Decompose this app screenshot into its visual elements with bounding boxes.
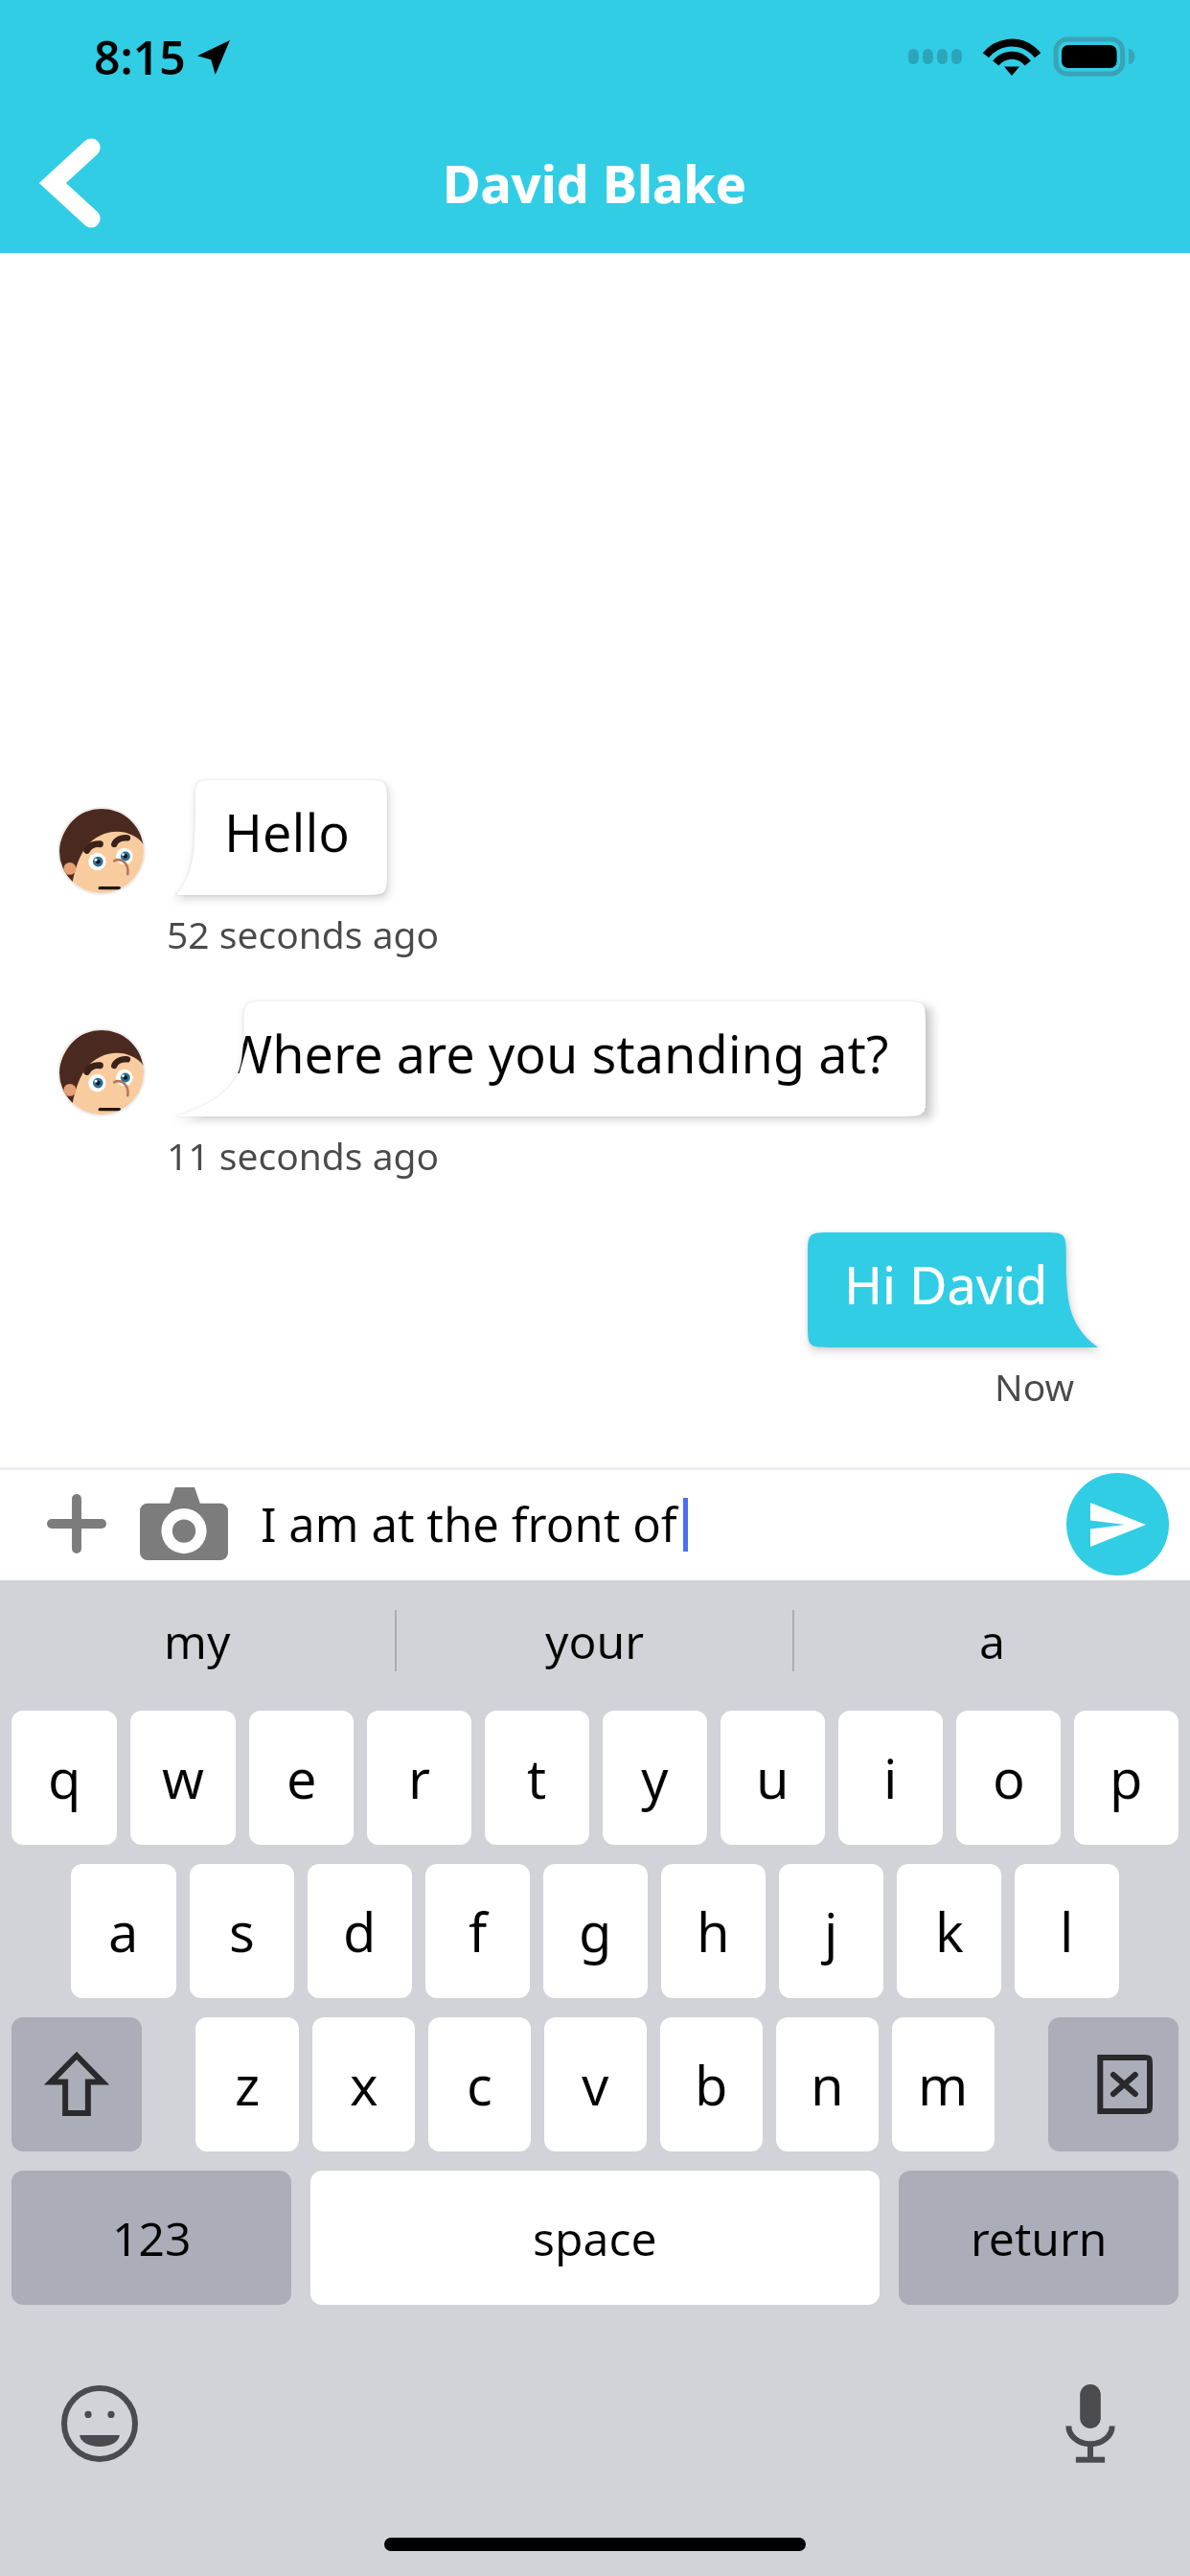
button[interactable]: Add attachment [38, 1485, 115, 1562]
staticText: Hi David [844, 1249, 1048, 1320]
button[interactable]: b [660, 2017, 763, 2151]
button[interactable]: Emoji [54, 2378, 146, 2470]
staticText: a [108, 1895, 139, 1967]
staticText: h [697, 1895, 730, 1967]
button[interactable]: v [544, 2017, 647, 2151]
staticText: o [993, 1741, 1025, 1814]
staticText: Where are you standing at? [224, 1018, 889, 1089]
staticText: g [579, 1895, 612, 1967]
staticText: a [979, 1610, 1005, 1672]
staticText: s [229, 1895, 255, 1967]
staticText: 8:15 [94, 26, 186, 88]
button[interactable]: your [397, 1580, 792, 1701]
button[interactable]: 123 [11, 2171, 291, 2305]
button[interactable]: x [312, 2017, 415, 2151]
staticText: n [811, 2048, 844, 2121]
staticText: 52 seconds ago [167, 908, 440, 959]
staticText: x [350, 2048, 378, 2121]
staticText: 11 seconds ago [167, 1130, 440, 1181]
button[interactable]: a [71, 1864, 176, 1998]
button[interactable]: p [1074, 1711, 1179, 1845]
button[interactable]: Send [1066, 1473, 1169, 1575]
button[interactable]: c [428, 2017, 531, 2151]
staticText: j [824, 1895, 838, 1967]
staticText: z [235, 2048, 261, 2121]
staticText: space [533, 2207, 657, 2269]
button[interactable]: g [543, 1864, 648, 1998]
button[interactable]: return [899, 2171, 1179, 2305]
button[interactable]: d [308, 1864, 412, 1998]
button[interactable]: Dictation [1044, 2378, 1136, 2470]
staticText: m [918, 2048, 969, 2121]
staticText: 123 [112, 2207, 192, 2269]
staticText: e [286, 1741, 317, 1814]
staticText: my [164, 1610, 231, 1672]
button[interactable]: t [485, 1711, 589, 1845]
button[interactable]: Backspace [1048, 2017, 1179, 2151]
button[interactable]: my [0, 1580, 395, 1701]
button[interactable]: h [661, 1864, 766, 1998]
staticText: r [408, 1741, 431, 1814]
staticText: u [756, 1741, 790, 1814]
staticText: v [582, 2048, 609, 2121]
button[interactable]: e [249, 1711, 354, 1845]
staticText: k [935, 1895, 964, 1967]
button[interactable]: Back [0, 114, 144, 252]
button[interactable]: q [11, 1711, 117, 1845]
staticText: d [343, 1895, 377, 1967]
staticText: David Blake [443, 148, 747, 218]
staticText: i [883, 1741, 898, 1814]
staticText: c [467, 2048, 492, 2121]
staticText: w [162, 1741, 205, 1814]
button[interactable]: r [367, 1711, 471, 1845]
button[interactable]: space [310, 2171, 880, 2305]
staticText: Now [995, 1361, 1075, 1412]
button[interactable]: y [603, 1711, 707, 1845]
staticText: b [695, 2048, 728, 2121]
button[interactable]: s [190, 1864, 294, 1998]
button[interactable]: Shift [11, 2017, 142, 2151]
button[interactable]: o [956, 1711, 1061, 1845]
button[interactable]: k [897, 1864, 1001, 1998]
button[interactable]: w [130, 1711, 236, 1845]
button[interactable]: u [721, 1711, 825, 1845]
staticText: Hello [224, 796, 351, 867]
button[interactable]: a [794, 1580, 1190, 1701]
button[interactable]: m [892, 2017, 995, 2151]
staticText: I am at the front of [261, 1492, 677, 1556]
staticText: q [48, 1741, 81, 1814]
staticText: p [1110, 1741, 1143, 1814]
button[interactable]: l [1015, 1864, 1119, 1998]
button[interactable]: i [838, 1711, 943, 1845]
button[interactable]: j [779, 1864, 883, 1998]
button[interactable]: n [776, 2017, 879, 2151]
button[interactable]: z [195, 2017, 299, 2151]
button[interactable]: f [425, 1864, 530, 1998]
staticText: f [469, 1895, 488, 1967]
staticText: your [545, 1610, 645, 1672]
staticText: t [527, 1741, 547, 1814]
staticText: l [1060, 1895, 1074, 1967]
staticText: return [971, 2207, 1108, 2269]
staticText: y [641, 1741, 669, 1814]
button[interactable]: Camera [138, 1484, 230, 1563]
